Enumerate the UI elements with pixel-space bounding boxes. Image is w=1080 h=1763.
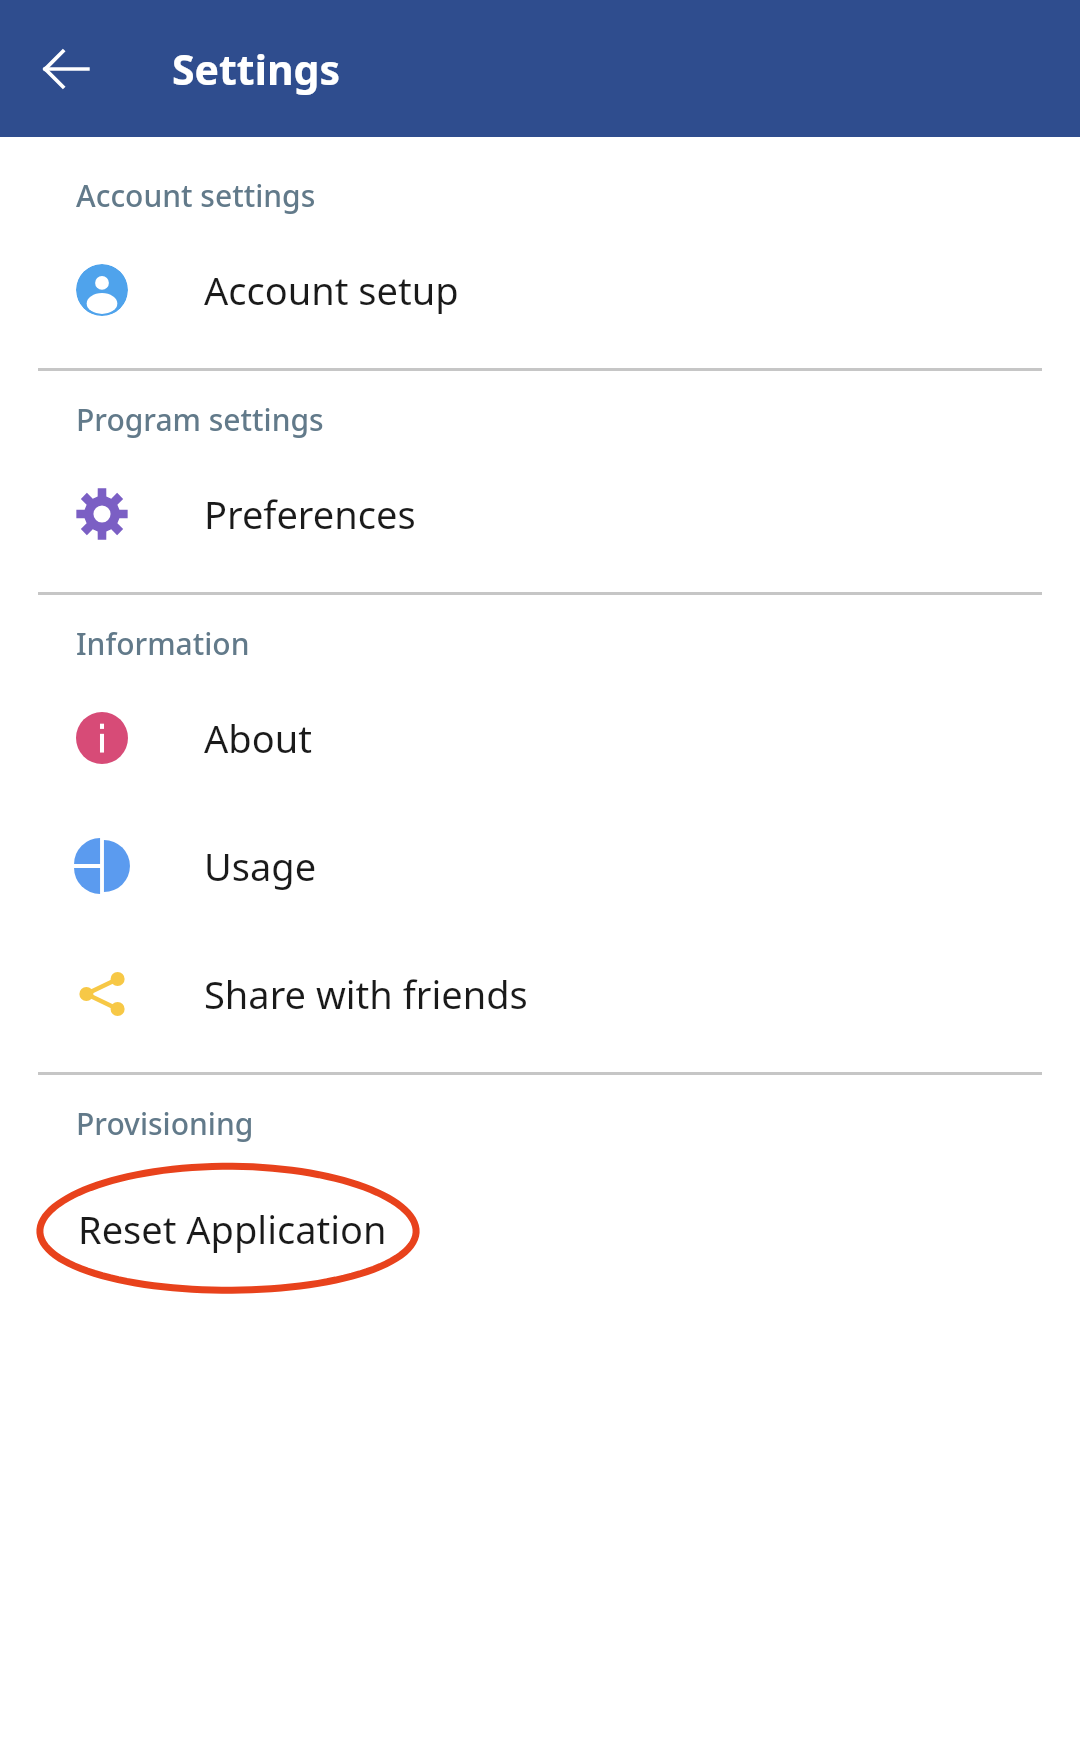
staticText: Provisioning <box>76 1103 1080 1144</box>
staticText: Usage <box>204 840 317 892</box>
button[interactable]: Usage <box>0 802 1080 930</box>
staticText: About <box>204 712 312 764</box>
staticText: Account settings <box>76 175 1080 216</box>
staticText: Account setup <box>204 264 459 316</box>
staticText: Reset Application <box>78 1203 387 1255</box>
staticText: Share with friends <box>204 968 528 1020</box>
button[interactable]: Preferences <box>0 450 1080 578</box>
button[interactable]: Share with friends <box>0 930 1080 1058</box>
button[interactable]: Reset Application <box>0 1154 1080 1304</box>
button[interactable]: Account setup <box>0 226 1080 354</box>
button[interactable]: About <box>0 674 1080 802</box>
staticText: Information <box>76 623 1080 664</box>
staticText: Preferences <box>204 488 416 540</box>
staticText: Program settings <box>76 399 1080 440</box>
staticText: Settings <box>172 41 341 97</box>
button[interactable]: Back <box>22 25 110 113</box>
